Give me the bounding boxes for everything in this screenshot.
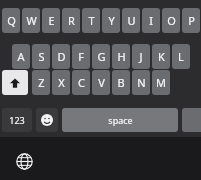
button[interactable]: space: [62, 108, 178, 132]
button[interactable]: F: [72, 44, 90, 69]
button[interactable]: X: [52, 70, 70, 95]
staticText: 123: [9, 114, 25, 126]
button[interactable]: W: [22, 8, 40, 33]
staticText: I: [149, 13, 153, 28]
staticText: V: [98, 75, 105, 90]
button[interactable]: I: [142, 8, 160, 33]
button[interactable]: Change keyboard language: [13, 150, 35, 172]
button[interactable]: P: [182, 8, 200, 33]
staticText: T: [88, 13, 95, 28]
button[interactable]: R: [62, 8, 80, 33]
button[interactable]: Z: [32, 70, 50, 95]
staticText: M: [156, 75, 166, 90]
staticText: H: [117, 49, 126, 64]
staticText: S: [38, 49, 45, 64]
staticText: R: [68, 13, 75, 28]
button[interactable]: N: [132, 70, 150, 95]
button[interactable]: C: [72, 70, 90, 95]
staticText: Y: [108, 13, 115, 28]
staticText: K: [158, 49, 165, 64]
staticText: L: [178, 49, 184, 64]
button[interactable]: B: [112, 70, 130, 95]
button[interactable]: D: [52, 44, 70, 69]
button[interactable]: K: [152, 44, 170, 69]
staticText: J: [139, 49, 143, 64]
staticText: O: [167, 13, 176, 28]
button[interactable]: 123: [2, 108, 32, 132]
button[interactable]: L: [172, 44, 190, 69]
staticText: G: [97, 49, 106, 64]
staticText: A: [17, 49, 25, 64]
button[interactable]: Emoji: [36, 108, 58, 132]
button[interactable]: M: [152, 70, 170, 95]
button[interactable]: G: [92, 44, 110, 69]
button[interactable]: Return: [182, 108, 201, 132]
button[interactable]: Shift: [2, 70, 28, 95]
staticText: space: [108, 114, 133, 126]
staticText: Z: [38, 75, 45, 90]
staticText: Q: [7, 13, 16, 28]
staticText: D: [57, 49, 66, 64]
staticText: F: [78, 49, 84, 64]
staticText: P: [188, 13, 195, 28]
button[interactable]: T: [82, 8, 100, 33]
button[interactable]: E: [42, 8, 60, 33]
staticText: U: [127, 13, 136, 28]
staticText: E: [48, 13, 55, 28]
button[interactable]: U: [122, 8, 140, 33]
staticText: C: [78, 75, 85, 90]
button[interactable]: Y: [102, 8, 120, 33]
button[interactable]: A: [12, 44, 30, 69]
staticText: B: [117, 75, 125, 90]
staticText: W: [26, 13, 37, 28]
staticText: X: [58, 75, 65, 90]
button[interactable]: J: [132, 44, 150, 69]
staticText: N: [137, 75, 146, 90]
button[interactable]: S: [32, 44, 50, 69]
button[interactable]: V: [92, 70, 110, 95]
button[interactable]: Q: [2, 8, 20, 33]
button[interactable]: O: [162, 8, 180, 33]
button[interactable]: H: [112, 44, 130, 69]
